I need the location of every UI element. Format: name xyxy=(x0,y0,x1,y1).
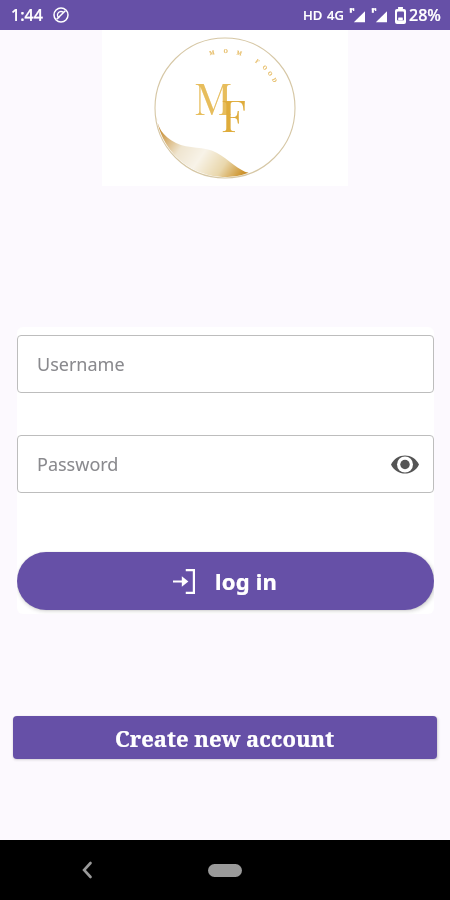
staticText: 1:44 xyxy=(11,4,43,26)
staticText: 28% xyxy=(409,4,441,26)
button[interactable]: Back xyxy=(68,850,108,890)
staticText: 4G xyxy=(327,6,344,24)
button[interactable]: Home xyxy=(208,864,242,877)
button[interactable]: log in xyxy=(17,552,434,610)
button[interactable]: Show password xyxy=(390,449,420,479)
button[interactable]: Password xyxy=(17,435,434,493)
button[interactable]: Create new account xyxy=(13,716,437,759)
staticText: Username xyxy=(37,352,125,377)
button[interactable]: Username xyxy=(17,335,434,393)
staticText: log in xyxy=(215,566,278,596)
staticText: HD xyxy=(303,6,323,24)
staticText: Create new account xyxy=(115,723,335,753)
staticText: Password xyxy=(37,452,119,477)
